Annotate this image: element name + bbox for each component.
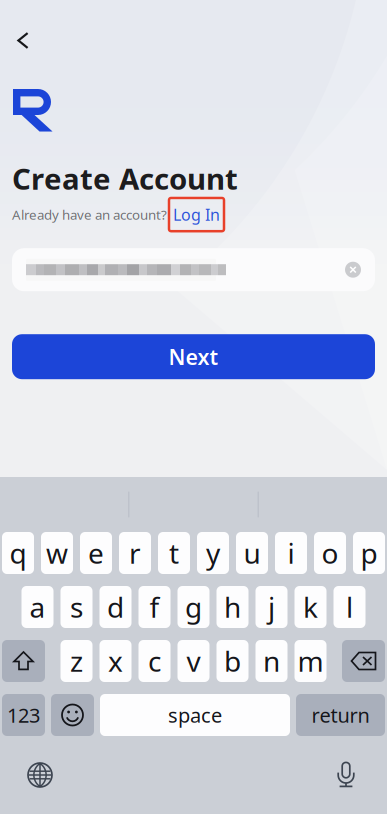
staticText: x [108, 642, 123, 680]
button[interactable]: Next [12, 334, 375, 379]
button[interactable]: Log In [169, 198, 224, 231]
button[interactable]: Back [0, 26, 42, 55]
button[interactable]: a [21, 586, 53, 628]
button[interactable]: o [314, 532, 346, 574]
button[interactable] [2, 640, 45, 682]
button[interactable]: s [60, 586, 92, 628]
staticText: f [149, 588, 159, 626]
staticText: Create Account [12, 159, 238, 198]
button[interactable]: r [119, 532, 151, 574]
button[interactable]: u [236, 532, 268, 574]
staticText: n [263, 642, 280, 680]
button[interactable]: space [100, 694, 290, 736]
button[interactable]: j [255, 586, 287, 628]
staticText: 123 [7, 702, 40, 728]
staticText: a [29, 588, 45, 626]
button[interactable]: Dictation [328, 753, 370, 797]
button[interactable]: p [353, 532, 385, 574]
button[interactable]: z [60, 640, 92, 682]
button[interactable]: v [177, 640, 209, 682]
staticText: space [168, 702, 222, 728]
button[interactable] [51, 694, 94, 736]
button[interactable]: k [294, 586, 326, 628]
button[interactable]: b [216, 640, 248, 682]
button[interactable]: g [177, 586, 209, 628]
button[interactable]: t [158, 532, 190, 574]
staticText: i [287, 534, 294, 572]
staticText: Log In [173, 204, 220, 225]
button[interactable]: return [296, 694, 385, 736]
staticText: b [224, 642, 241, 680]
button[interactable]: Clear text [345, 262, 361, 278]
button[interactable]: n [255, 640, 287, 682]
button[interactable]: f [138, 586, 170, 628]
staticText: u [243, 534, 260, 572]
staticText: v [186, 642, 200, 680]
button[interactable]: Next keyboard [17, 752, 63, 798]
button[interactable]: q [2, 532, 34, 574]
staticText: c [148, 642, 161, 680]
button[interactable]: i [275, 532, 307, 574]
staticText: w [46, 534, 68, 572]
button[interactable]: x [99, 640, 131, 682]
staticText: q [9, 534, 26, 572]
staticText: y [206, 534, 220, 572]
staticText: g [185, 588, 202, 626]
button[interactable]: w [41, 532, 73, 574]
staticText: e [88, 534, 104, 572]
button[interactable]: e [80, 532, 112, 574]
staticText: r [129, 534, 141, 572]
staticText: l [346, 588, 353, 626]
staticText: k [303, 588, 318, 626]
button[interactable]: c [138, 640, 170, 682]
staticText: z [70, 642, 83, 680]
staticText: d [107, 588, 124, 626]
button[interactable]: l [333, 586, 365, 628]
staticText: h [224, 588, 241, 626]
staticText: o [321, 534, 338, 572]
button[interactable] [342, 640, 385, 682]
staticText: Next [168, 342, 218, 371]
staticText: s [70, 588, 83, 626]
button[interactable]: d [99, 586, 131, 628]
button[interactable]: y [197, 532, 229, 574]
staticText: t [169, 534, 179, 572]
button[interactable]: 123 [2, 694, 45, 736]
staticText: j [268, 588, 275, 626]
staticText: Already have an account? [12, 206, 167, 223]
button[interactable]: m [294, 640, 326, 682]
staticText: return [311, 702, 369, 728]
button[interactable]: h [216, 586, 248, 628]
staticText: p [360, 534, 377, 572]
staticText: m [297, 642, 323, 680]
